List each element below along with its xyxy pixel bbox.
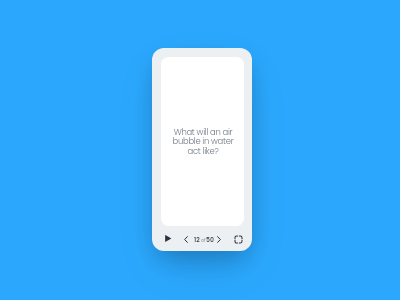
button[interactable]: What will an air bubble in water act lik… [161, 57, 244, 226]
button[interactable]: Previous [180, 233, 192, 245]
button[interactable]: Next [213, 233, 225, 245]
button[interactable]: Play [162, 232, 174, 244]
button[interactable]: Fullscreen [232, 233, 244, 245]
staticText: of [201, 237, 206, 244]
staticText: What will an air bubble in water act lik… [171, 126, 235, 157]
staticText: 12 [194, 236, 200, 245]
button[interactable]: Card 12 of 50 [192, 233, 212, 245]
staticText: 50 [206, 236, 214, 245]
